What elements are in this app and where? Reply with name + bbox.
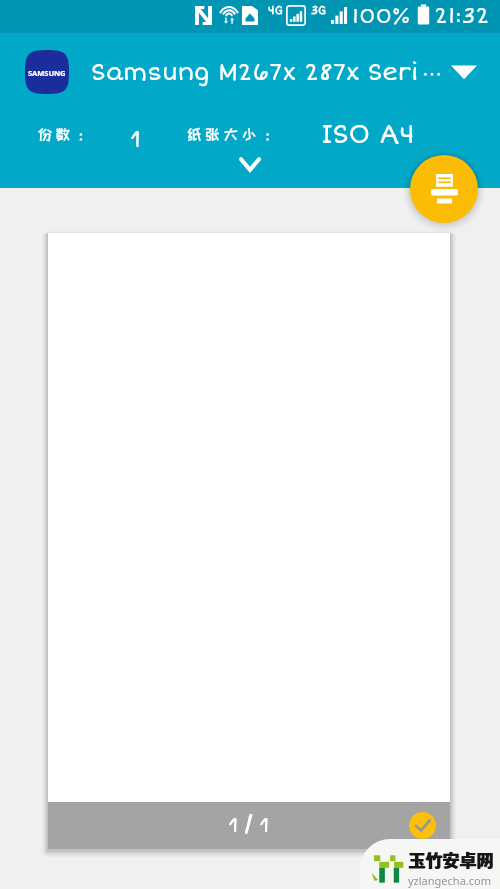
button[interactable]: Expand: [230, 144, 270, 184]
staticText: SAMSUNG: [28, 68, 66, 78]
staticText: 1 / 1: [228, 808, 270, 843]
staticText: ISO A4: [321, 119, 416, 151]
staticText: 份数：: [38, 126, 92, 142]
staticText: 玉竹安卓网: [409, 847, 494, 872]
staticText: 纸张大小：: [187, 126, 279, 142]
staticText: 21:32: [434, 2, 490, 29]
button[interactable]: SAMSUNG: [0, 33, 500, 111]
staticText: yzlangecha.com: [408, 873, 491, 888]
staticText: 玉竹安卓网: [408, 847, 493, 872]
staticText: Samsung M267x 287x Seri: [91, 58, 419, 87]
staticText: 100%: [352, 3, 411, 29]
staticText: 1: [130, 121, 141, 157]
button[interactable]: Selected: [409, 812, 436, 839]
staticText: 3G: [311, 4, 326, 18]
button[interactable]: Print: [410, 155, 478, 223]
staticText: 4G: [268, 4, 283, 18]
